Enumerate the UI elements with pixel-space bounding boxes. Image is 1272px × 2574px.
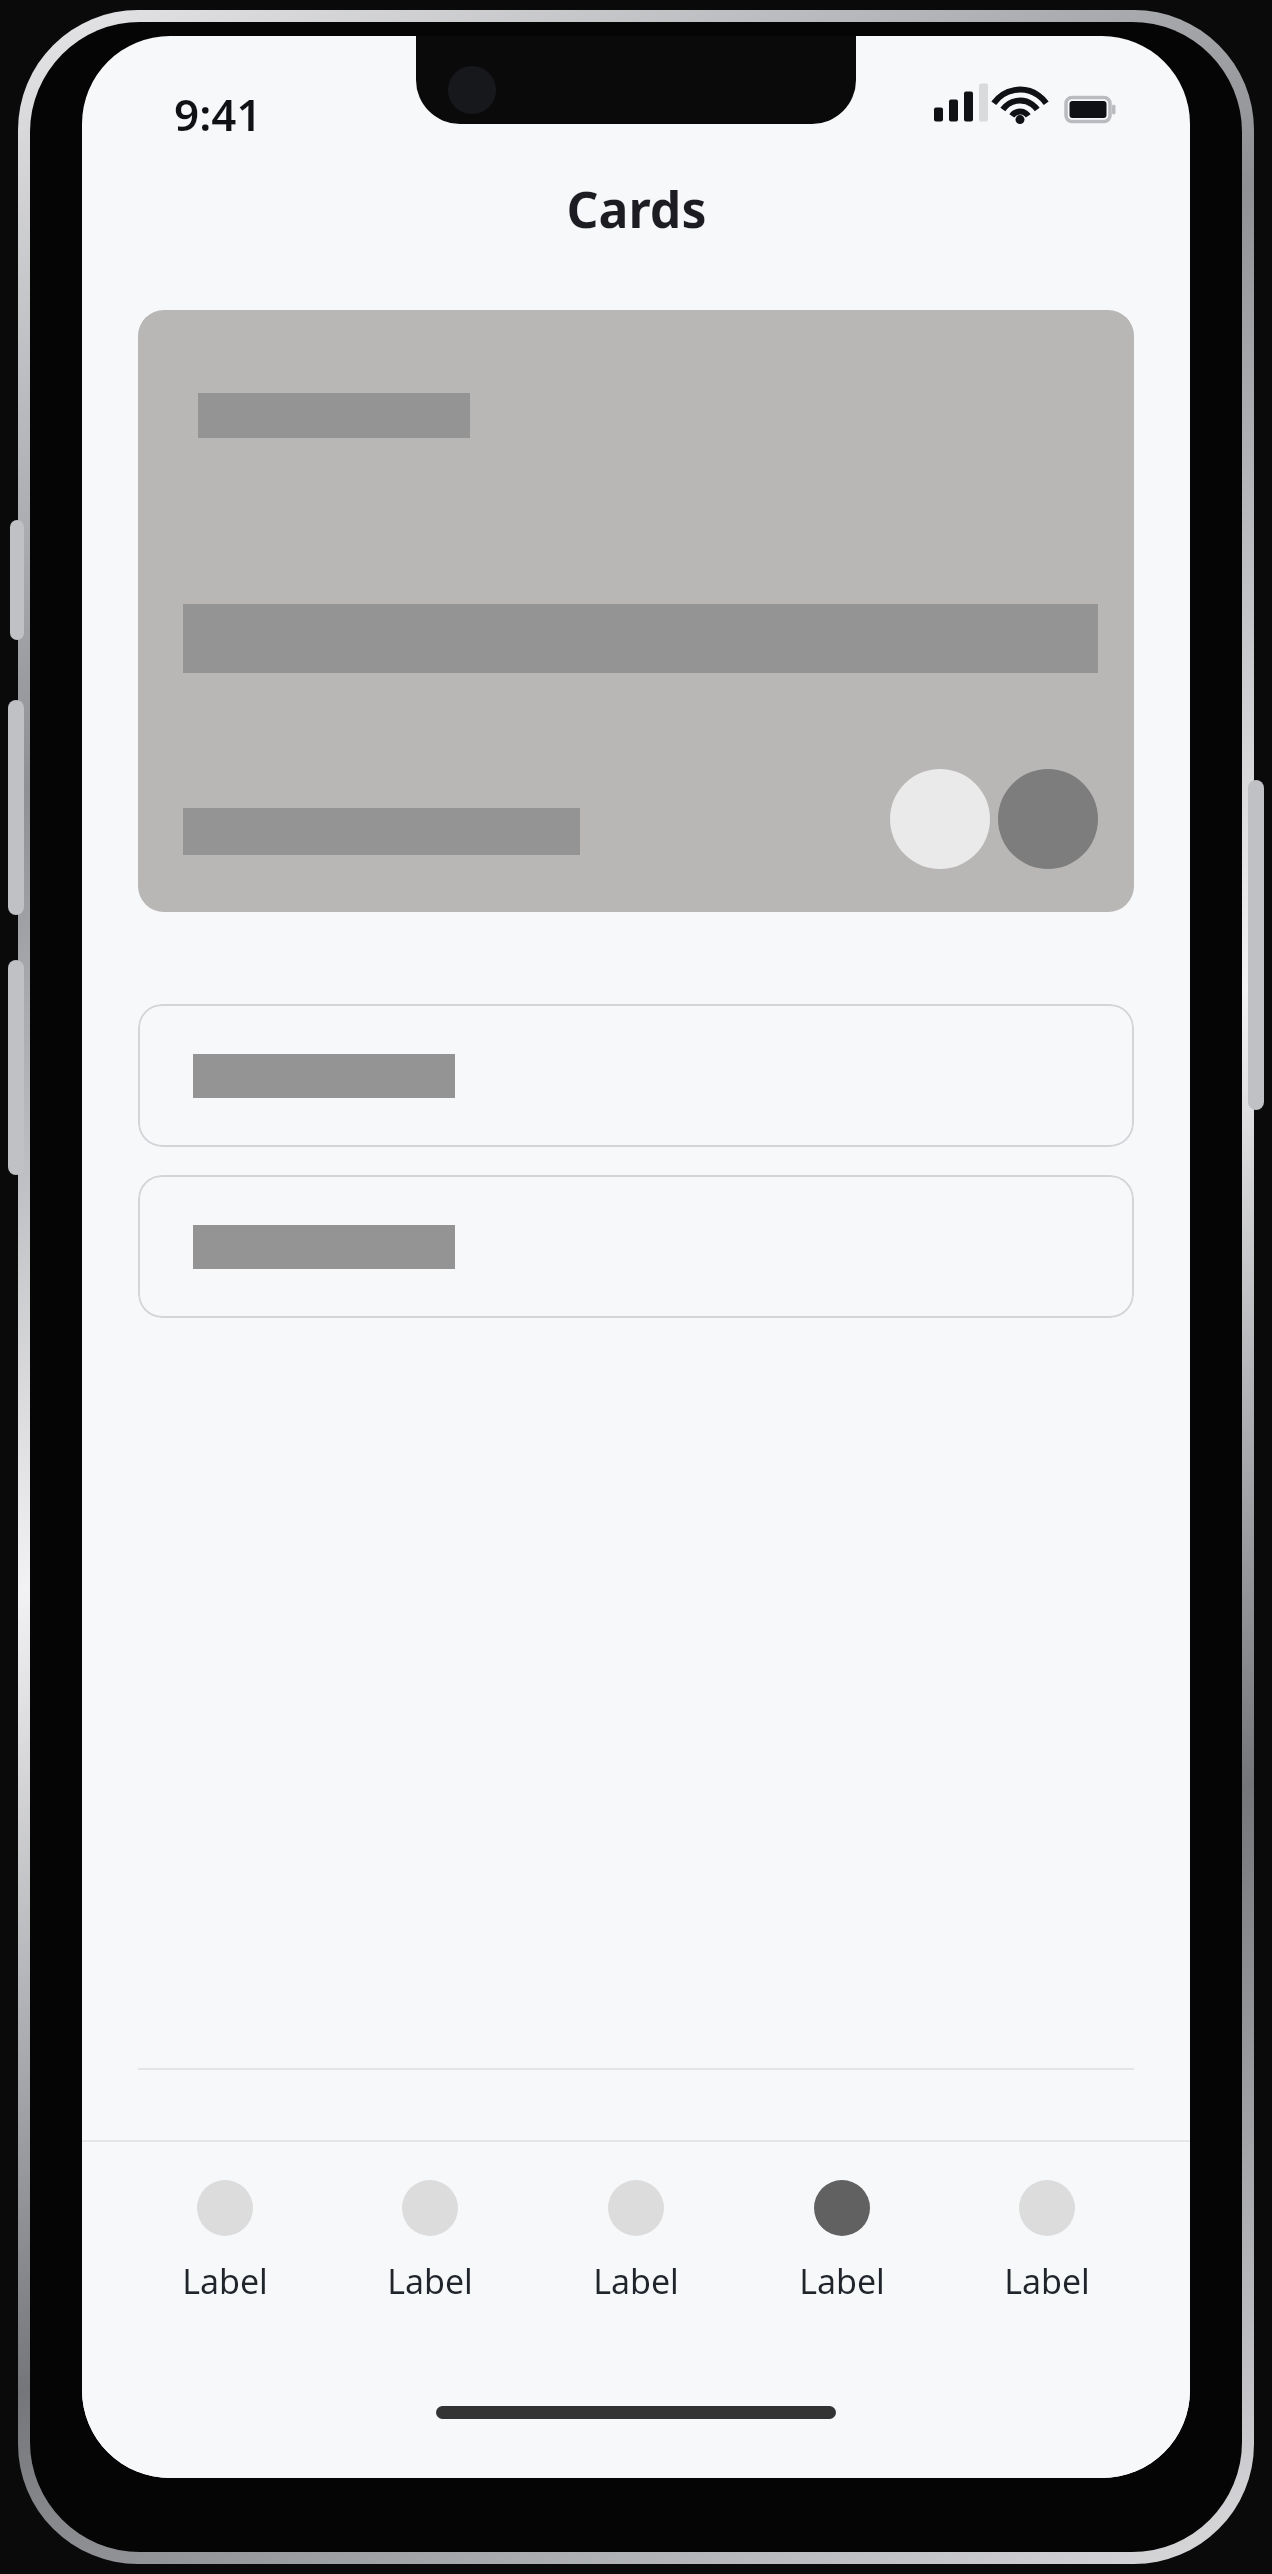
button[interactable]: Tab icon: [345, 2142, 515, 2304]
button[interactable]: Tab icon: [757, 2142, 927, 2304]
button[interactable]: Tab icon: [962, 2142, 1132, 2304]
other: Tab icon: [1019, 2180, 1075, 2236]
other: Tab icon: [197, 2180, 253, 2236]
other: Tab icon: [608, 2180, 664, 2236]
staticText: 9:41: [174, 84, 262, 144]
button[interactable]: [138, 1004, 1134, 1147]
button[interactable]: Tab icon: [140, 2142, 310, 2304]
staticText: Cards: [566, 175, 707, 243]
staticText: Label: [182, 2258, 268, 2304]
button[interactable]: [138, 310, 1134, 912]
staticText: Label: [1004, 2258, 1090, 2304]
staticText: Label: [593, 2258, 679, 2304]
staticText: Label: [799, 2258, 885, 2304]
button[interactable]: Tab icon: [551, 2142, 721, 2304]
other: Tab icon: [814, 2180, 870, 2236]
other: Tab icon: [402, 2180, 458, 2236]
staticText: Label: [387, 2258, 473, 2304]
button[interactable]: [138, 1175, 1134, 1318]
